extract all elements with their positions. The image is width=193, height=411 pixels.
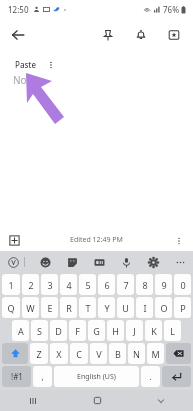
- staticText: L: [170, 325, 175, 337]
- button[interactable]: 5: [79, 274, 96, 295]
- staticText: O: [160, 302, 168, 314]
- button[interactable]: 1: [2, 274, 20, 295]
- button[interactable]: 0: [174, 274, 191, 295]
- button[interactable]: Enter: [162, 366, 191, 387]
- button[interactable]: More options: [169, 231, 188, 250]
- button[interactable]: P: [174, 297, 191, 318]
- button[interactable]: .: [141, 366, 160, 387]
- button[interactable]: More options: [43, 55, 58, 74]
- staticText: I: [143, 302, 147, 314]
- button[interactable]: E: [41, 297, 58, 318]
- button[interactable]: Insert: [5, 231, 24, 250]
- staticText: English (US): [77, 372, 116, 382]
- button[interactable]: B: [109, 343, 126, 364]
- staticText: Y: [104, 302, 110, 314]
- button[interactable]: Home: [65, 390, 129, 411]
- button[interactable]: !#1: [2, 366, 31, 387]
- staticText: X: [56, 348, 62, 360]
- staticText: 4: [66, 279, 72, 291]
- button[interactable]: Paste: [8, 55, 43, 74]
- button[interactable]: D: [50, 320, 67, 341]
- button[interactable]: U: [117, 297, 134, 318]
- button[interactable]: Backspace: [166, 343, 191, 364]
- button[interactable]: O: [155, 297, 172, 318]
- button[interactable]: 6: [98, 274, 115, 295]
- button[interactable]: T: [79, 297, 96, 318]
- staticText: 1: [8, 279, 14, 291]
- staticText: .: [149, 371, 152, 382]
- staticText: R: [66, 302, 72, 314]
- button[interactable]: Set reminder: [128, 22, 154, 48]
- staticText: 0: [180, 279, 186, 291]
- staticText: Edited 12:49 PM: [70, 235, 123, 245]
- staticText: 3: [47, 279, 53, 291]
- button[interactable]: Back: [5, 22, 31, 48]
- button[interactable]: Z: [30, 343, 48, 364]
- button[interactable]: 3: [41, 274, 58, 295]
- button[interactable]: More: [171, 253, 189, 271]
- button[interactable]: 2: [22, 274, 39, 295]
- button[interactable]: Microphone: [117, 253, 135, 271]
- staticText: A: [18, 325, 24, 337]
- button[interactable]: S: [31, 320, 48, 341]
- staticText: 5: [85, 279, 91, 291]
- button[interactable]: 4: [60, 274, 77, 295]
- button[interactable]: C: [70, 343, 88, 364]
- button[interactable]: V: [90, 343, 107, 364]
- button[interactable]: Recent apps: [0, 390, 65, 411]
- staticText: M: [151, 348, 160, 360]
- staticText: 8: [142, 279, 148, 291]
- button[interactable]: Stickers: [63, 253, 81, 271]
- button[interactable]: W: [22, 297, 39, 318]
- staticText: Q: [7, 302, 15, 314]
- staticText: D: [55, 325, 62, 337]
- staticText: P: [180, 302, 186, 314]
- staticText: V: [96, 348, 102, 360]
- staticText: 12:50: [8, 4, 29, 15]
- button[interactable]: R: [60, 297, 77, 318]
- button[interactable]: 9: [155, 274, 172, 295]
- button[interactable]: I: [136, 297, 153, 318]
- button[interactable]: M: [147, 343, 164, 364]
- staticText: W: [26, 302, 35, 314]
- staticText: 7: [123, 279, 129, 291]
- staticText: 76%: [163, 4, 179, 15]
- button[interactable]: Voice input: [4, 253, 22, 271]
- staticText: ,: [41, 371, 44, 382]
- button[interactable]: Add to favourites: [161, 22, 187, 48]
- button[interactable]: Hide keyboard: [129, 390, 193, 411]
- button[interactable]: K: [145, 320, 162, 341]
- button[interactable]: G: [88, 320, 105, 341]
- button[interactable]: English (US): [54, 366, 139, 387]
- button[interactable]: H: [107, 320, 124, 341]
- button[interactable]: 7: [117, 274, 134, 295]
- staticText: !#1: [11, 371, 23, 382]
- button[interactable]: A: [12, 320, 29, 341]
- staticText: G: [93, 325, 100, 337]
- button[interactable]: J: [126, 320, 143, 341]
- button[interactable]: ,: [33, 366, 52, 387]
- staticText: 2: [28, 279, 34, 291]
- button[interactable]: Pin note: [95, 22, 121, 48]
- staticText: U: [122, 302, 129, 314]
- staticText: B: [115, 348, 121, 360]
- button[interactable]: Y: [98, 297, 115, 318]
- button[interactable]: Emoji: [36, 253, 54, 271]
- button[interactable]: Q: [2, 297, 20, 318]
- button[interactable]: L: [164, 320, 181, 341]
- button[interactable]: Shift: [2, 343, 28, 364]
- button[interactable]: N: [128, 343, 145, 364]
- staticText: K: [151, 325, 157, 337]
- staticText: Paste: [15, 59, 36, 70]
- staticText: N: [133, 348, 140, 360]
- button[interactable]: F: [69, 320, 86, 341]
- button[interactable]: GIF: [90, 253, 108, 271]
- staticText: 6: [104, 279, 110, 291]
- staticText: T: [85, 302, 91, 314]
- button[interactable]: 8: [136, 274, 153, 295]
- button[interactable]: Keyboard settings: [144, 253, 162, 271]
- staticText: F: [75, 325, 80, 337]
- staticText: S: [37, 325, 42, 337]
- button[interactable]: X: [50, 343, 68, 364]
- staticText: C: [76, 348, 82, 360]
